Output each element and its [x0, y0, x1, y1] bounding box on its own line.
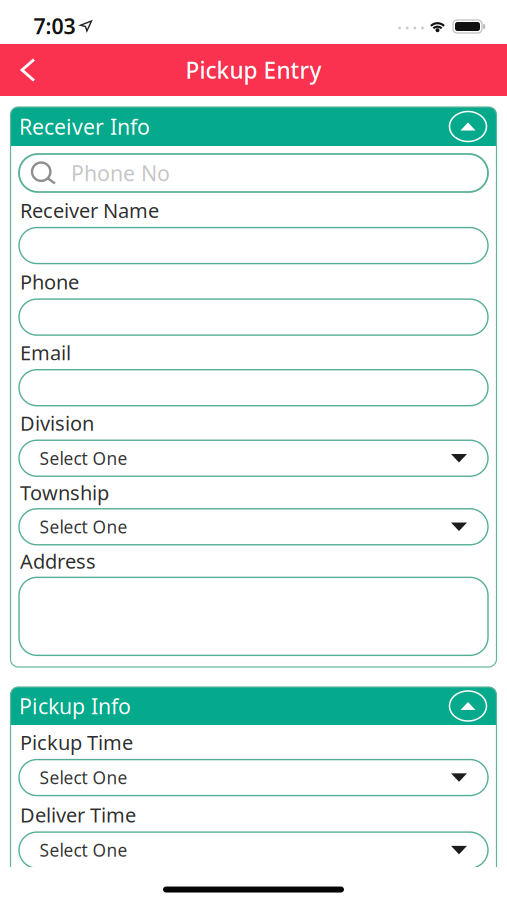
staticText: Pickup Time	[20, 729, 133, 756]
staticText: Division	[20, 410, 94, 436]
staticText: Select One	[39, 839, 127, 862]
staticText: Select One	[39, 447, 127, 470]
button[interactable]: Collapse section	[445, 687, 490, 725]
staticText: Township	[20, 479, 109, 506]
staticText: Deliver Time	[20, 802, 136, 828]
button[interactable]: Email	[10, 370, 496, 406]
button[interactable]: Search by Phone No	[10, 154, 496, 192]
button[interactable]: Select One	[10, 509, 496, 545]
staticText: Select One	[39, 515, 127, 538]
staticText: Phone No	[71, 159, 170, 187]
staticText: Pickup Info	[19, 692, 131, 720]
button[interactable]: Receiver Name	[10, 228, 496, 264]
staticText: Receiver Name	[20, 197, 159, 224]
staticText: Phone	[20, 269, 79, 295]
button[interactable]: Address	[10, 577, 496, 655]
staticText: Pickup Entry	[185, 55, 321, 85]
staticText: Address	[20, 548, 96, 574]
button[interactable]: Select One	[10, 760, 496, 796]
staticText: Email	[20, 339, 71, 366]
staticText: 7:03	[33, 12, 75, 40]
button[interactable]: Collapse section	[445, 107, 490, 146]
button[interactable]: Phone	[10, 299, 496, 335]
staticText: Select One	[39, 766, 127, 789]
button[interactable]: Select One	[10, 832, 496, 868]
staticText: Receiver Info	[19, 112, 150, 141]
button[interactable]: Back	[6, 44, 50, 96]
button[interactable]: Select One	[10, 440, 496, 476]
